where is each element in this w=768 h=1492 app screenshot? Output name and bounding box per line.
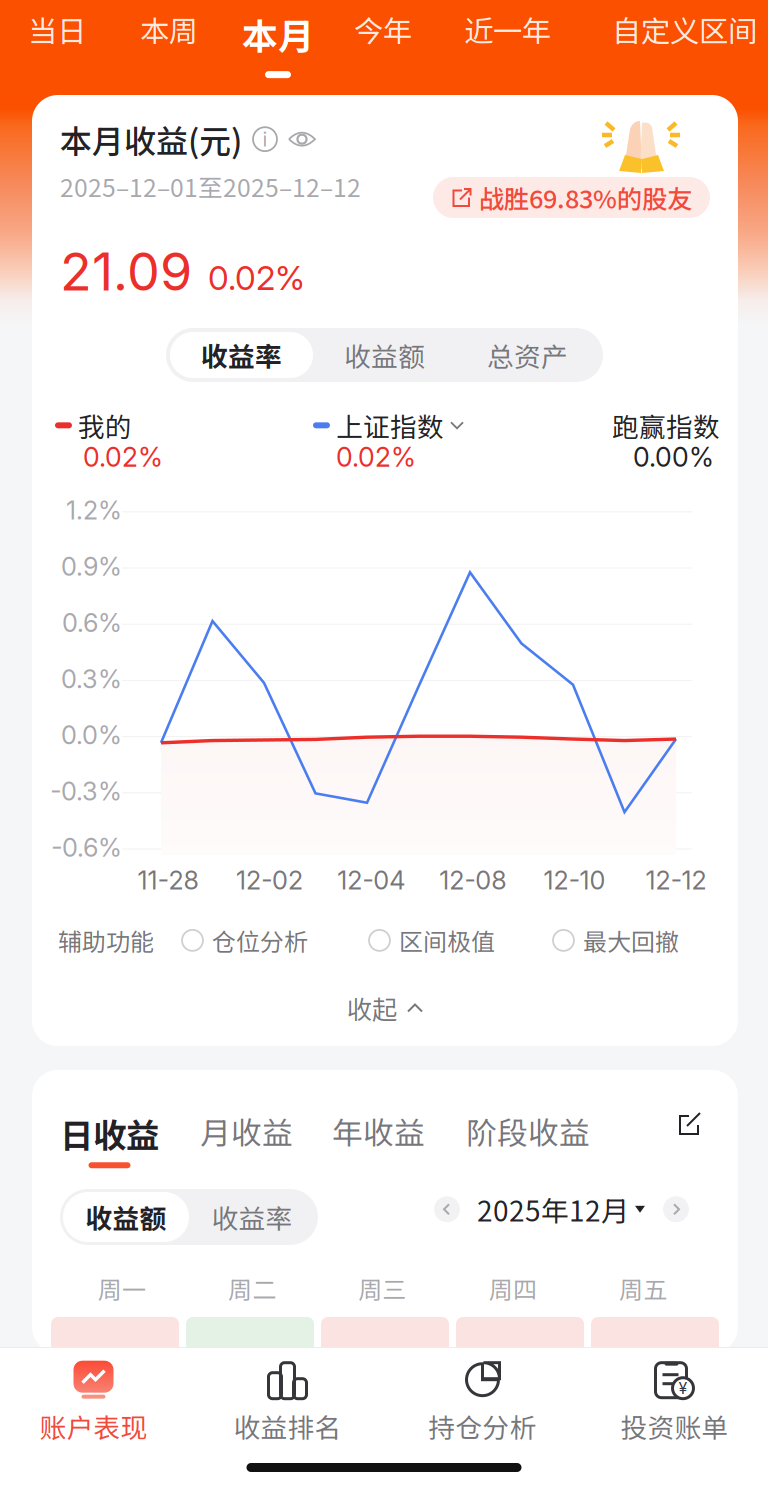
button[interactable]: 年收益: [332, 1109, 425, 1164]
button[interactable]: 本月: [0, 0, 314, 78]
staticText: 0.6%: [62, 607, 122, 638]
staticText: 本周: [140, 8, 198, 50]
staticText: 近一年: [464, 8, 551, 50]
button[interactable]: 月收益: [200, 1109, 293, 1164]
button[interactable]: 区间极值: [369, 923, 495, 958]
staticText: 周一: [98, 1271, 146, 1306]
staticText: 收益额: [85, 1198, 166, 1236]
staticText: 总资产: [487, 336, 568, 374]
staticText: 持仓分析: [428, 1407, 536, 1445]
staticText: 账户表现: [39, 1407, 147, 1445]
staticText: -0.3%: [50, 776, 122, 807]
button[interactable]: 2025年12月: [477, 1189, 646, 1229]
button[interactable]: 收益额: [63, 1192, 189, 1242]
staticText: 收益额: [344, 336, 425, 374]
button[interactable]: 战胜69.83%的股友: [433, 177, 738, 218]
staticText: 0.02%: [208, 258, 305, 298]
staticText: 2025年12月: [477, 1189, 629, 1229]
staticText: 投资账单: [620, 1407, 728, 1445]
button[interactable]: 总资产: [456, 332, 599, 378]
button[interactable]: 下一月: [663, 1196, 689, 1222]
staticText: 0.00%: [633, 441, 714, 473]
button[interactable]: 收益额: [313, 332, 456, 378]
staticText: 上证指数: [336, 406, 444, 445]
staticText: 0.3%: [61, 664, 122, 694]
staticText: 当日: [28, 8, 86, 50]
staticText: 0.9%: [61, 551, 122, 582]
staticText: ¥: [678, 1378, 687, 1398]
staticText: 我的: [78, 406, 132, 445]
staticText: 12-10: [543, 865, 605, 896]
staticText: 2025–12–01至2025–12–12: [60, 168, 361, 204]
button[interactable]: 当日: [0, 0, 86, 68]
staticText: 区间极值: [399, 923, 495, 958]
button[interactable]: 本周: [0, 0, 198, 68]
staticText: 辅助功能: [58, 923, 154, 958]
staticText: 月收益: [200, 1109, 293, 1153]
button[interactable]: 分享: [676, 1109, 704, 1137]
button[interactable]: 自定义区间: [0, 0, 757, 68]
staticText: 周二: [228, 1271, 276, 1306]
staticText: 12-08: [439, 865, 506, 896]
staticText: 周三: [359, 1271, 407, 1306]
staticText: 周五: [619, 1271, 667, 1306]
staticText: -0.6%: [51, 832, 122, 863]
staticText: 最大回撤: [583, 923, 679, 958]
button[interactable]: 收益率: [170, 332, 313, 378]
button[interactable]: 今年: [0, 0, 412, 68]
staticText: 跑赢指数: [612, 406, 720, 445]
button[interactable]: 收益率: [189, 1192, 315, 1242]
staticText: 21.09: [60, 240, 192, 303]
staticText: 仓位分析: [212, 923, 308, 958]
staticText: 0.0%: [61, 720, 122, 750]
button[interactable]: 收起: [32, 953, 738, 1046]
staticText: 11-28: [137, 865, 198, 896]
staticText: 周四: [489, 1271, 537, 1306]
button[interactable]: 日收益: [60, 1109, 159, 1168]
staticText: 0.02%: [83, 441, 163, 473]
staticText: 收益率: [211, 1198, 292, 1236]
staticText: 收起: [347, 990, 397, 1026]
staticText: 12-02: [236, 865, 303, 896]
staticText: 12-04: [337, 865, 405, 896]
button[interactable]: 近一年: [0, 0, 551, 68]
staticText: 1.2%: [66, 495, 122, 526]
staticText: 战胜69.83%的股友: [479, 179, 692, 216]
staticText: 12-12: [645, 865, 706, 896]
staticText: i: [262, 127, 267, 151]
staticText: 本月收益(元): [60, 116, 242, 162]
staticText: 本月: [242, 8, 314, 60]
staticText: 收益排名: [233, 1407, 341, 1445]
button[interactable]: 阶段收益: [466, 1109, 590, 1164]
button[interactable]: 持仓分析: [0, 1348, 576, 1448]
button[interactable]: 收益排名: [0, 1348, 381, 1448]
button[interactable]: 最大回撤: [553, 923, 679, 958]
staticText: 阶段收益: [466, 1109, 590, 1153]
button[interactable]: 仓位分析: [182, 923, 308, 958]
button[interactable]: 账户表现: [0, 1348, 187, 1448]
button[interactable]: ¥: [0, 1348, 768, 1448]
staticText: 自定义区间: [612, 8, 757, 50]
button[interactable]: 上一月: [434, 1196, 460, 1222]
staticText: 0.02%: [336, 441, 416, 473]
staticText: 日收益: [60, 1109, 159, 1157]
staticText: 收益率: [201, 336, 282, 374]
staticText: 年收益: [332, 1109, 425, 1153]
staticText: 今年: [354, 8, 412, 50]
